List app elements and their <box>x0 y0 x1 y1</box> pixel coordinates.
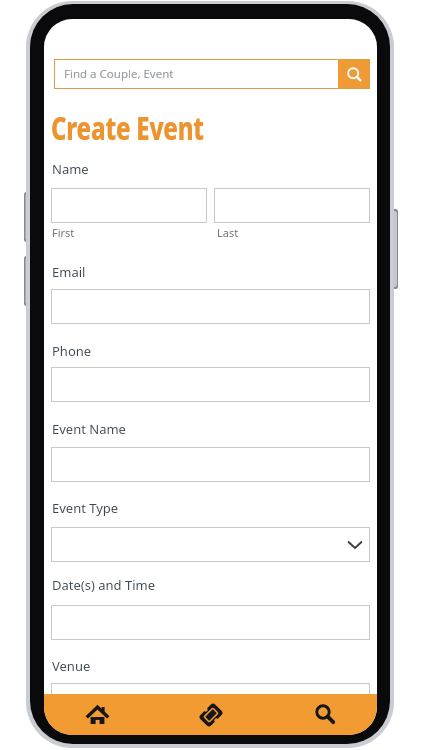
button[interactable] <box>51 605 370 640</box>
staticText: Create Event <box>51 106 204 149</box>
button[interactable] <box>51 527 370 562</box>
button[interactable] <box>51 188 207 223</box>
button[interactable] <box>155 694 266 735</box>
staticText: Name <box>52 160 89 178</box>
staticText: Email <box>52 263 86 281</box>
button[interactable] <box>338 59 370 89</box>
staticText: Last <box>217 225 239 240</box>
staticText: Event Name <box>52 420 126 438</box>
staticText: First <box>52 225 75 240</box>
button[interactable]: Find a Couple, Event <box>54 59 370 89</box>
staticText: Phone <box>52 342 92 360</box>
button[interactable] <box>51 683 370 718</box>
button[interactable] <box>51 367 370 402</box>
button[interactable] <box>51 289 370 324</box>
staticText: Event Type <box>52 499 119 517</box>
staticText: Find a Couple, Event <box>64 66 174 82</box>
button[interactable] <box>51 447 370 482</box>
button[interactable] <box>214 188 370 223</box>
staticText: Venue <box>52 657 91 675</box>
staticText: Date(s) and Time <box>52 576 155 594</box>
button[interactable] <box>44 694 155 735</box>
button[interactable] <box>266 694 377 735</box>
